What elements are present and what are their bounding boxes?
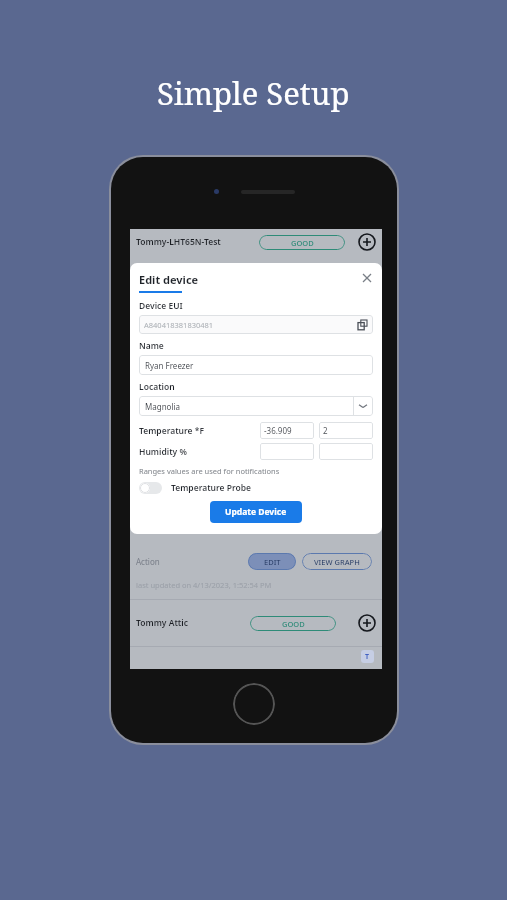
staticText: Tommy Attic	[136, 617, 188, 629]
staticText: last updated on 4/13/2023, 1:52:54 PM	[136, 580, 272, 590]
staticText: VIEW GRAPH	[314, 557, 360, 567]
staticText: EDIT	[264, 557, 281, 567]
button[interactable]: Update Device	[210, 501, 302, 523]
staticText: Name	[139, 340, 164, 352]
button[interactable]: Magnolia	[139, 396, 373, 416]
staticText: Action	[136, 556, 160, 567]
button[interactable]	[260, 443, 314, 460]
button[interactable]: EDIT	[248, 553, 296, 570]
button[interactable]: VIEW GRAPH	[302, 553, 372, 570]
button[interactable]: Add device	[358, 233, 376, 251]
button[interactable]: Home	[233, 683, 275, 725]
button[interactable]: A840418381830481	[139, 315, 373, 334]
staticText: Temperature Probe	[171, 482, 252, 494]
button[interactable]: Close	[361, 272, 373, 284]
staticText: -36.909	[264, 425, 292, 436]
staticText: Humidity %	[139, 446, 187, 458]
button[interactable]: Add device	[358, 614, 376, 632]
staticText: A840418381830481	[144, 320, 214, 330]
staticText: Ranges values are used for notifications	[139, 466, 280, 476]
button[interactable]: Ryan Freezer	[139, 355, 373, 375]
staticText: GOOD	[291, 238, 314, 248]
staticText: Edit device	[139, 272, 199, 287]
staticText: T	[365, 652, 370, 662]
staticText: Magnolia	[145, 401, 181, 412]
button[interactable]: Info	[361, 650, 374, 663]
staticText: Location	[139, 381, 175, 393]
button[interactable]: GOOD	[250, 616, 336, 631]
staticText: Device EUI	[139, 300, 183, 312]
button[interactable]: Temperature Probe	[139, 482, 252, 494]
staticText: 2	[323, 425, 328, 436]
staticText: Ryan Freezer	[145, 360, 194, 371]
staticText: Simple Setup	[157, 72, 350, 114]
staticText: Tommy-LHT65N-Test	[136, 236, 221, 248]
other: Copy	[358, 320, 368, 330]
staticText: Update Device	[225, 506, 287, 518]
button[interactable]: 2	[319, 422, 373, 439]
button[interactable]: GOOD	[259, 235, 345, 250]
staticText: GOOD	[282, 619, 305, 629]
staticText: Temperature *F	[139, 425, 204, 437]
button[interactable]: -36.909	[260, 422, 314, 439]
button[interactable]	[319, 443, 373, 460]
